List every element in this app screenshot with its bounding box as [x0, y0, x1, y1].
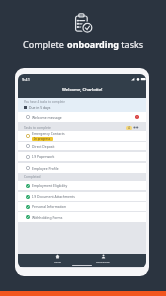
staticText: I-9 Document Attachments	[32, 194, 75, 199]
staticText: Home	[54, 260, 61, 263]
staticText: onboarding	[67, 38, 119, 50]
staticText: Emergency Contacts	[32, 131, 65, 136]
staticText: 9:41	[22, 77, 30, 82]
button[interactable]: Welcome message	[18, 112, 146, 122]
staticText: Welcome, Charlotte!	[62, 87, 103, 93]
staticText: Personal Information	[32, 204, 66, 209]
button[interactable]: Home	[54, 254, 61, 263]
button[interactable]: Employee Profile	[18, 163, 146, 173]
staticText: 4	[128, 126, 130, 130]
staticText: tasks	[119, 38, 144, 50]
other: Onboarding tasks	[73, 13, 93, 33]
button[interactable]: Direct Deposit	[18, 142, 146, 150]
button[interactable]: Withholding Forms	[18, 212, 146, 222]
staticText: Tasks to complete	[24, 126, 51, 130]
button[interactable]: I-9 Document Attachments	[18, 192, 146, 201]
staticText: Withholding Forms	[32, 215, 63, 220]
button[interactable]: Onboarding	[96, 254, 110, 263]
staticText: Due in 5 days	[29, 105, 51, 110]
button[interactable]: I-9 Paperwork	[18, 152, 146, 161]
button[interactable]: Emergency Contacts	[18, 131, 146, 141]
button[interactable]: Personal Information	[18, 202, 146, 211]
staticText: Employee Profile	[32, 166, 59, 171]
staticText: Welcome message	[32, 115, 62, 120]
staticText: Complete	[23, 38, 67, 50]
staticText: In progress	[34, 137, 51, 141]
staticText: Onboarding	[96, 260, 110, 263]
staticText: You have 4 tasks to complete	[24, 100, 65, 104]
staticText: Employment Eligibility	[32, 183, 68, 188]
staticText: Direct Deposit	[32, 144, 55, 149]
staticText: Completed	[24, 175, 41, 179]
button[interactable]: Employment Eligibility	[18, 181, 146, 190]
staticText: I-9 Paperwork	[32, 154, 55, 159]
